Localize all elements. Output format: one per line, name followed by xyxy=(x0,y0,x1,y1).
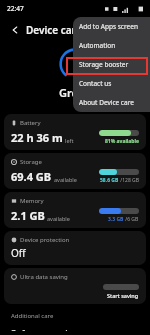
staticText: Ultra data saving xyxy=(20,273,68,281)
staticText: About Device care xyxy=(79,98,134,107)
button[interactable]: About Device care xyxy=(73,93,150,112)
staticText: 3.3 GB xyxy=(108,216,124,223)
staticText: Contact us xyxy=(79,79,112,88)
staticText: Additional care xyxy=(11,312,54,320)
button[interactable]: Automation xyxy=(73,36,150,55)
staticText: available xyxy=(47,215,70,222)
staticText: Storage xyxy=(20,158,42,166)
staticText: /128 GB xyxy=(119,177,139,184)
button[interactable]: Storage booster xyxy=(73,55,150,74)
staticText: Device care xyxy=(26,23,82,37)
staticText: 69.4 GB xyxy=(11,169,52,184)
button[interactable]: Ultra data saving xyxy=(4,268,146,304)
button[interactable]: Storage xyxy=(4,153,146,189)
button[interactable]: Add to Apps screen xyxy=(73,17,150,36)
staticText: Battery xyxy=(20,119,41,127)
button[interactable]: Contact us xyxy=(73,74,150,93)
staticText: 22:47 xyxy=(7,4,24,13)
button[interactable]: Battery xyxy=(4,114,146,150)
staticText: Add to Apps screen xyxy=(79,22,138,31)
button[interactable]: Software update xyxy=(0,323,150,335)
staticText: 81% available xyxy=(105,138,139,145)
staticText: Automation xyxy=(79,41,116,50)
staticText: 22 h 36 m xyxy=(11,130,63,145)
staticText: 58.6 GB xyxy=(100,177,119,184)
button[interactable]: Back xyxy=(6,21,24,39)
staticText: left xyxy=(65,137,74,144)
staticText: Great! xyxy=(59,85,92,100)
staticText: /6 GB xyxy=(124,216,139,223)
staticText: Memory xyxy=(20,197,44,205)
button[interactable]: Device protection xyxy=(4,231,146,265)
button[interactable]: Memory xyxy=(4,192,146,228)
staticText: available xyxy=(54,176,77,183)
staticText: Start saving xyxy=(107,292,139,299)
staticText: Off xyxy=(11,246,26,260)
staticText: Device protection xyxy=(20,236,70,244)
staticText: Software update xyxy=(11,327,81,331)
staticText: 2.1 GB xyxy=(11,208,45,223)
staticText: Storage booster xyxy=(79,60,129,69)
